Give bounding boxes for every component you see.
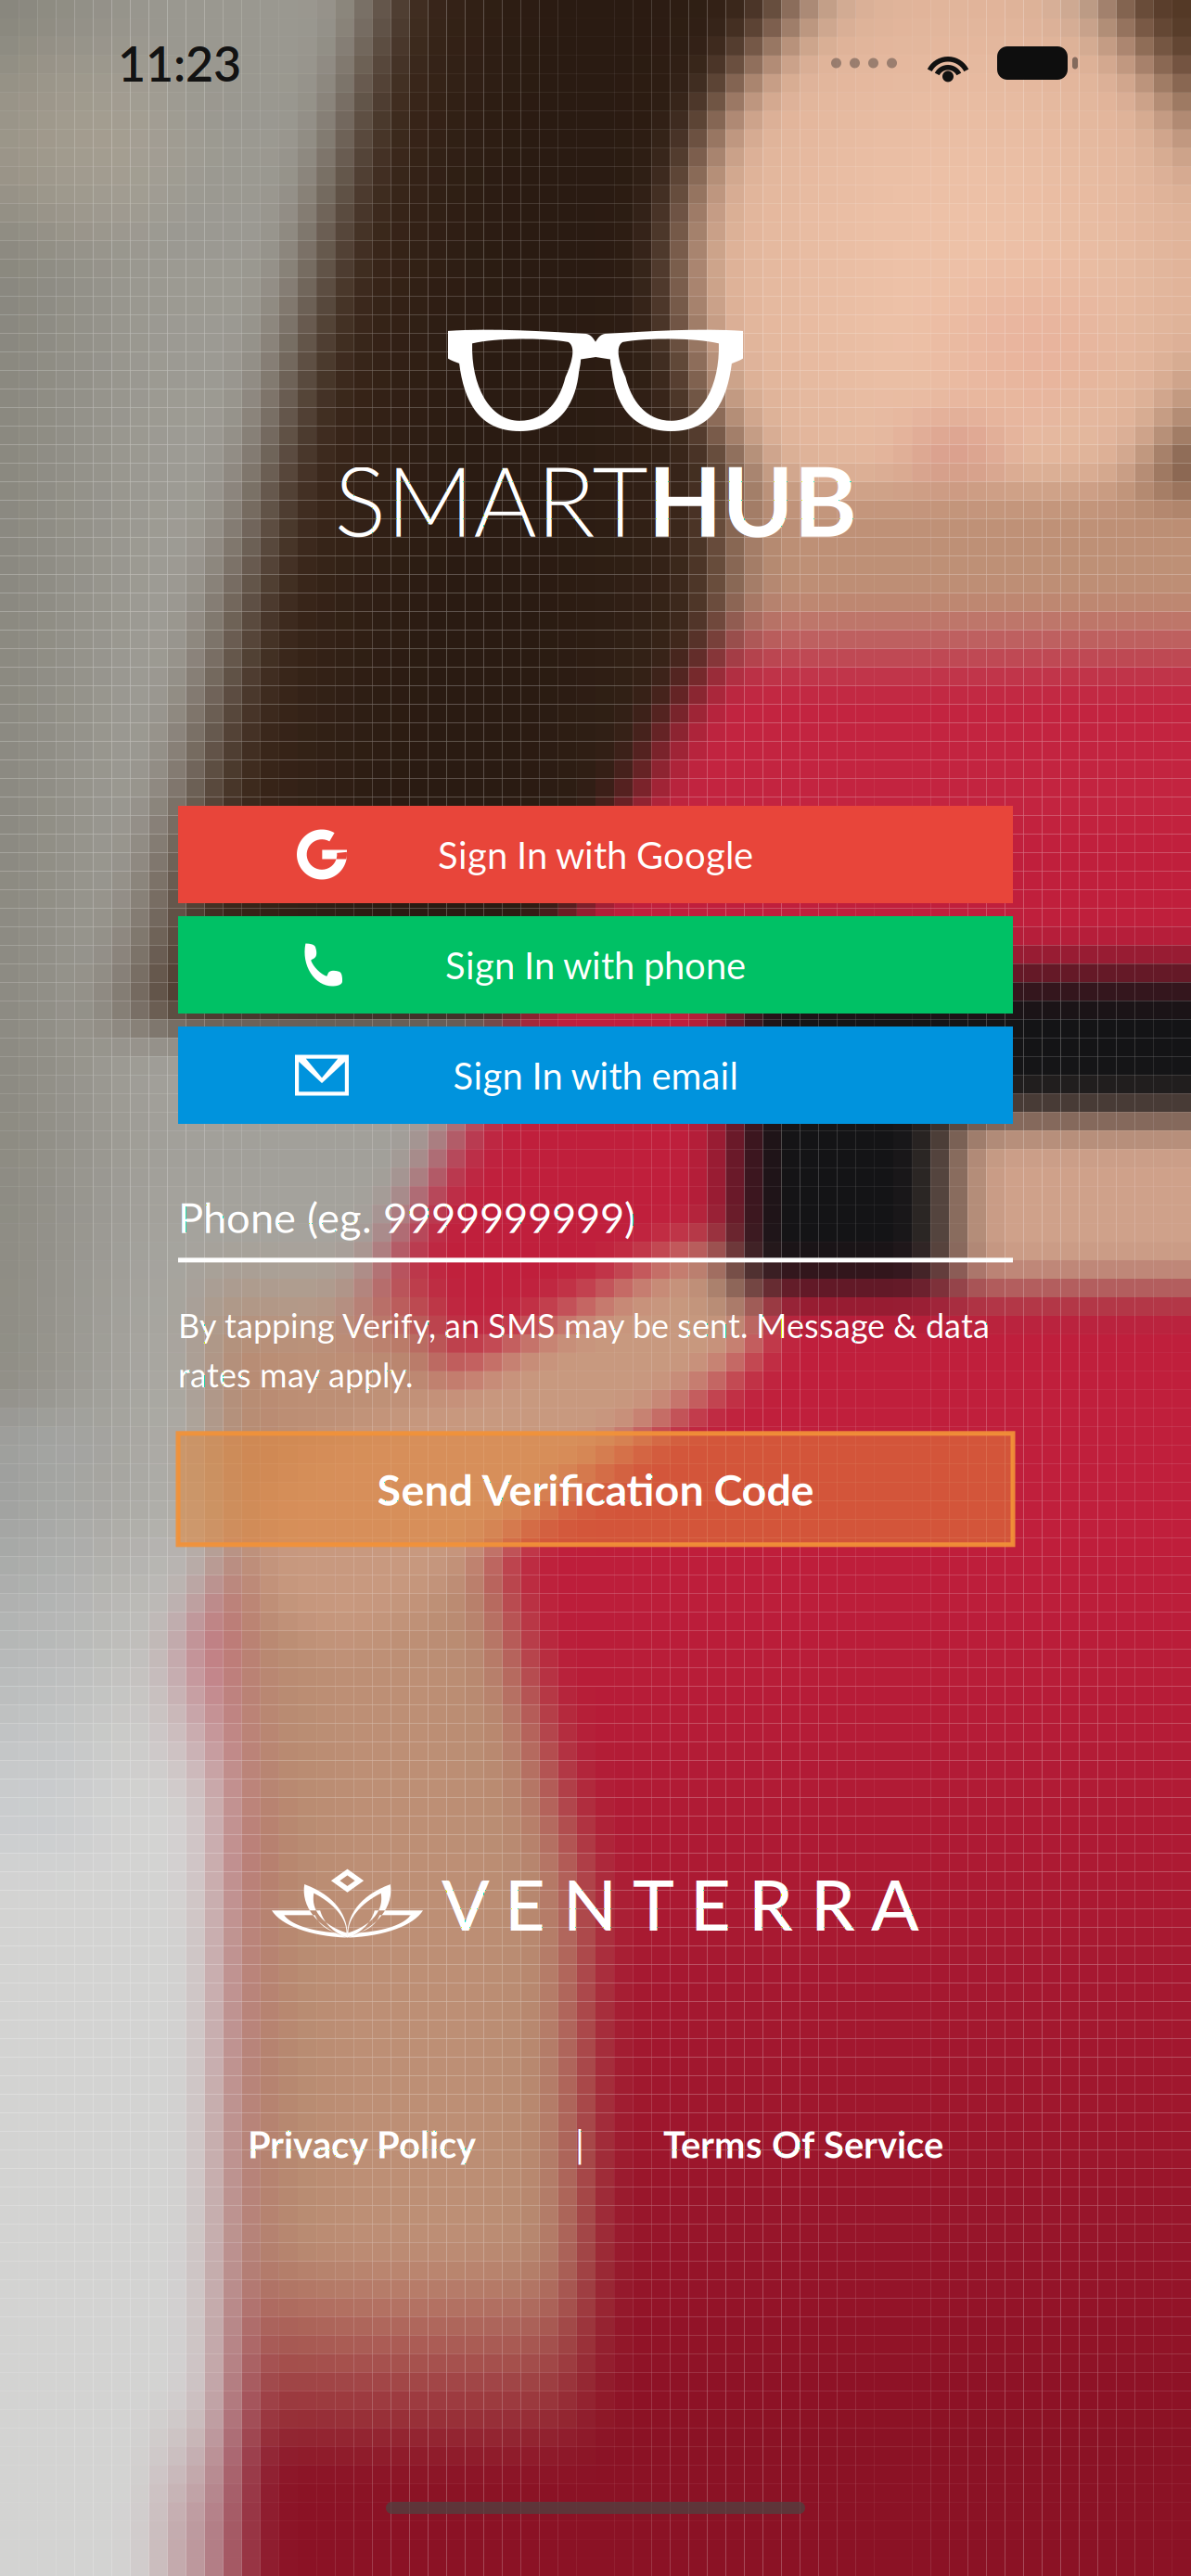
staticText: rates may apply. xyxy=(178,1354,413,1394)
staticText: Terms Of Service xyxy=(663,2122,943,2166)
staticText: SMART xyxy=(334,441,648,557)
staticText: 11:23 xyxy=(118,34,241,92)
staticText: | xyxy=(575,2122,584,2166)
staticText: By tapping Verify, an SMS may be sent. M… xyxy=(178,1305,990,1345)
button[interactable]: Terms Of Service xyxy=(663,2122,943,2166)
staticText: Sign In with Google xyxy=(438,832,753,877)
button[interactable]: Privacy Policy xyxy=(248,2122,476,2166)
button[interactable]: Send Verification Code xyxy=(178,1433,1013,1545)
button[interactable]: Sign In with Google xyxy=(178,806,1013,903)
staticText: Send Verification Code xyxy=(377,1463,814,1515)
staticText: Phone (eg. 9999999999) xyxy=(178,1192,635,1242)
staticText: HUB xyxy=(648,441,857,557)
button[interactable]: Sign In with email xyxy=(178,1027,1013,1124)
staticText: Sign In with phone xyxy=(445,943,746,987)
staticText: Sign In with email xyxy=(453,1053,738,1097)
staticText: Privacy Policy xyxy=(248,2122,476,2166)
button[interactable]: Sign In with phone xyxy=(178,916,1013,1014)
staticText: V E N T E R R A xyxy=(442,1861,919,1946)
